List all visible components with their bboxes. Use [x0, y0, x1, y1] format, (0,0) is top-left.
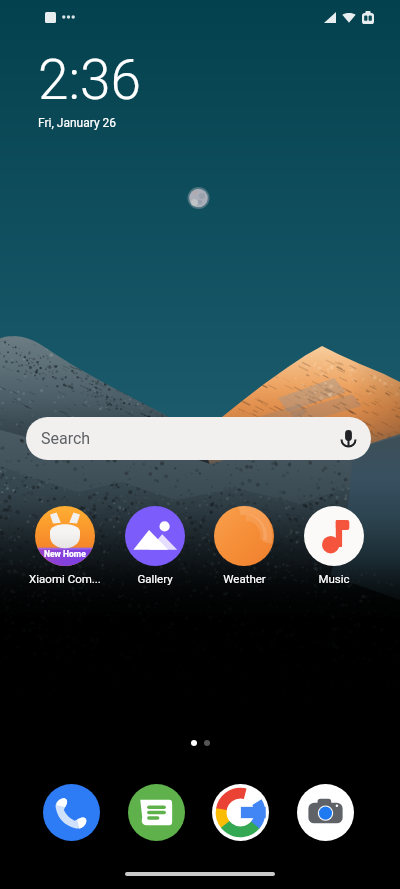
button[interactable]: Phone: [43, 784, 100, 841]
staticText: 2:36: [38, 48, 142, 112]
staticText: Xiaomi Com...: [29, 572, 101, 585]
staticText: Gallery: [137, 572, 173, 585]
button[interactable]: Google Search: [212, 784, 269, 841]
button[interactable]: Search: [26, 417, 371, 460]
staticText: Fri, January 26: [38, 116, 117, 130]
button[interactable]: New Home: [25, 506, 105, 585]
staticText: Weather: [223, 572, 266, 585]
staticText: New Home: [44, 549, 86, 559]
button[interactable]: Music: [294, 506, 374, 585]
button[interactable]: Gallery: [115, 506, 195, 585]
staticText: Music: [318, 572, 350, 585]
button[interactable]: Messages: [128, 784, 185, 841]
button[interactable]: Weather: [204, 506, 284, 585]
staticText: Search: [41, 429, 91, 448]
button[interactable]: Camera: [297, 784, 354, 841]
